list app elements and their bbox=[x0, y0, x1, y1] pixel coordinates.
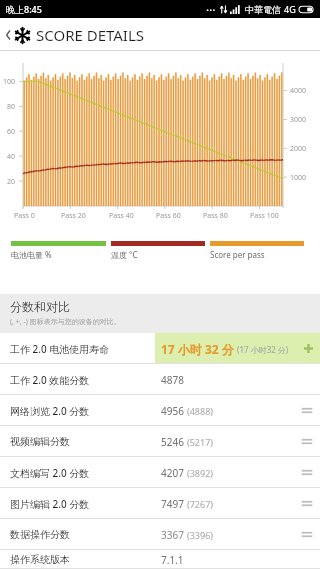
staticText: 7497 bbox=[161, 497, 184, 511]
staticText: 4207 bbox=[161, 466, 184, 480]
staticText: Pass 60 bbox=[156, 211, 181, 221]
staticText: 5246 bbox=[161, 435, 184, 449]
button[interactable]: 网络浏览 2.0 分数 bbox=[0, 395, 320, 426]
staticText: 分数和对比 bbox=[10, 299, 70, 314]
other: Better than comparison bbox=[303, 343, 314, 354]
button[interactable]: 视频编辑分数 bbox=[0, 426, 320, 457]
other: Equal to comparison bbox=[300, 529, 314, 540]
staticText: (17 小时32 分) bbox=[237, 344, 289, 355]
button[interactable]: 数据操作分数 bbox=[0, 519, 320, 550]
staticText: 60 bbox=[7, 127, 16, 137]
other: Equal to comparison bbox=[300, 436, 314, 447]
staticText: (4888) bbox=[187, 405, 213, 417]
staticText: 数据操作分数 bbox=[10, 528, 70, 541]
staticText: 电池电量 % bbox=[11, 249, 52, 260]
staticText: 4G bbox=[284, 3, 296, 15]
other: Equal to comparison bbox=[300, 498, 314, 509]
other: Equal to comparison bbox=[300, 467, 314, 478]
staticText: (5217) bbox=[187, 436, 213, 448]
button[interactable]: 操作系统版本 bbox=[0, 550, 320, 569]
staticText: 3000 bbox=[290, 115, 307, 125]
staticText: 3367 bbox=[161, 528, 184, 542]
staticText: 40 bbox=[7, 152, 16, 162]
staticText: Pass 100 bbox=[250, 211, 279, 221]
staticText: Pass 20 bbox=[61, 211, 86, 221]
staticText: (3892) bbox=[187, 467, 213, 479]
button[interactable]: Back bbox=[0, 18, 320, 51]
staticText: (, +, -) 图标表示与您的设备的对比。 bbox=[10, 317, 121, 327]
staticText: Score per pass bbox=[210, 249, 265, 260]
staticText: (7267) bbox=[187, 498, 213, 510]
staticText: Pass 0 bbox=[14, 211, 35, 221]
staticText: 100 bbox=[3, 77, 16, 87]
button[interactable]: 文档编写 2.0 分数 bbox=[0, 457, 320, 488]
staticText: 4000 bbox=[290, 86, 307, 96]
staticText: 17 小时 32 分 bbox=[161, 341, 234, 357]
staticText: 4878 bbox=[161, 373, 184, 387]
staticText: Pass 40 bbox=[109, 211, 134, 221]
staticText: 工作 2.0 电池使用寿命 bbox=[10, 342, 110, 356]
staticText: 视频编辑分数 bbox=[10, 435, 70, 448]
staticText: 晚上8:45 bbox=[6, 3, 42, 15]
staticText: (3396) bbox=[187, 529, 213, 541]
staticText: 图片编辑 2.0 分数 bbox=[10, 497, 90, 511]
staticText: 操作系统版本 bbox=[10, 553, 70, 566]
other: Equal to comparison bbox=[300, 405, 314, 416]
staticText: 80 bbox=[7, 102, 16, 112]
staticText: Pass 80 bbox=[203, 211, 228, 221]
staticText: 7.1.1 bbox=[161, 553, 184, 567]
button[interactable]: 工作 2.0 效能分数 bbox=[0, 364, 320, 395]
staticText: 温度 °C bbox=[111, 249, 138, 260]
staticText: 中華電信 bbox=[245, 4, 281, 15]
staticText: 文档编写 2.0 分数 bbox=[10, 466, 90, 480]
staticText: 工作 2.0 效能分数 bbox=[10, 373, 90, 387]
staticText: SCORE DETAILS bbox=[36, 25, 145, 45]
staticText: 20 bbox=[7, 177, 16, 187]
button[interactable]: 图片编辑 2.0 分数 bbox=[0, 488, 320, 519]
button[interactable]: 工作 2.0 电池使用寿命 bbox=[0, 333, 320, 364]
staticText: 1000 bbox=[290, 173, 307, 183]
staticText: 4956 bbox=[161, 404, 184, 418]
staticText: 网络浏览 2.0 分数 bbox=[10, 404, 90, 418]
staticText: 2000 bbox=[290, 144, 307, 154]
